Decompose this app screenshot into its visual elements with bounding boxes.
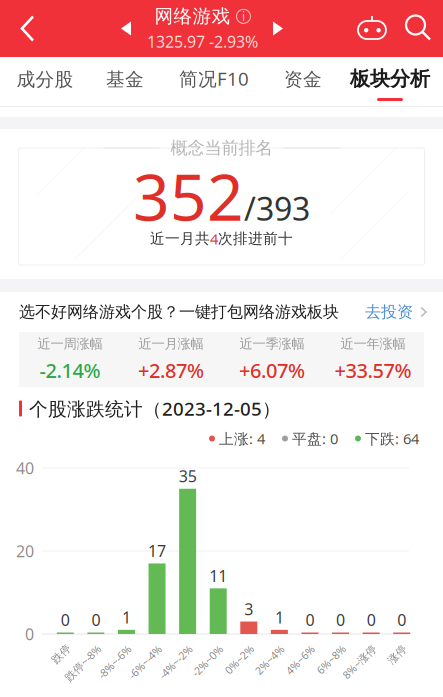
staticText: 板块分析 — [350, 66, 430, 91]
staticText: 平盘: 0 — [292, 429, 338, 448]
staticText: 资金 — [284, 68, 322, 91]
staticText: 0 — [367, 609, 376, 630]
staticText: 跌停~-8% — [60, 656, 106, 670]
staticText: 基金 — [106, 68, 144, 91]
staticText: 2%~4% — [252, 653, 288, 667]
staticText: /393 — [244, 187, 310, 230]
button[interactable]: Previous sector — [111, 0, 141, 57]
staticText: 近一月涨幅 — [138, 335, 203, 352]
staticText: 下跌: 64 — [365, 429, 419, 448]
staticText: 简况F10 — [179, 66, 249, 91]
staticText: -2.14% — [39, 357, 100, 383]
staticText: 352 — [133, 153, 244, 238]
staticText: 20 — [16, 540, 34, 562]
staticText: i — [242, 8, 245, 24]
staticText: 6%~8% — [313, 652, 349, 666]
button[interactable]: 板块分析 — [344, 57, 436, 106]
staticText: 35 — [179, 465, 197, 487]
staticText: 概念当前排名 — [170, 137, 272, 159]
staticText: -8%~-6% — [94, 655, 136, 669]
staticText: 选不好网络游戏个股？一键打包网络游戏板块 — [19, 302, 339, 322]
staticText: 4 — [210, 229, 218, 248]
staticText: 成分股 — [16, 68, 73, 91]
staticText: 次排进前十 — [218, 230, 293, 248]
staticText: 1 — [275, 607, 284, 628]
staticText: 跌停 — [50, 647, 72, 661]
staticText: 0 — [336, 609, 345, 630]
staticText: 8%~涨停 — [338, 654, 381, 669]
staticText: 网络游戏 — [154, 5, 230, 28]
staticText: 17 — [148, 540, 166, 561]
staticText: 1325.97 -2.93% — [147, 31, 258, 52]
button[interactable]: Search — [395, 0, 443, 57]
staticText: 11 — [209, 565, 227, 586]
staticText: 1 — [122, 607, 131, 628]
staticText: 近一季涨幅 — [239, 335, 304, 352]
staticText: 近一周涨幅 — [37, 335, 102, 352]
staticText: -4%~-2% — [155, 655, 197, 669]
staticText: +33.57% — [334, 357, 411, 383]
staticText: 0 — [305, 609, 314, 630]
staticText: 涨停 — [386, 648, 408, 661]
staticText: +6.07% — [239, 357, 305, 383]
button[interactable]: 资金 — [262, 57, 344, 106]
staticText: +2.87% — [138, 357, 204, 383]
staticText: 去投资 — [365, 302, 413, 322]
staticText: 0 — [61, 609, 70, 630]
staticText: 近一月共 — [150, 230, 210, 248]
button[interactable]: 选不好网络游戏个股？一键打包网络游戏板块 — [0, 292, 443, 332]
button[interactable]: 简况F10 — [166, 57, 262, 106]
staticText: 3 — [244, 598, 253, 619]
button[interactable]: 基金 — [84, 57, 166, 106]
button[interactable]: 成分股 — [6, 57, 84, 106]
staticText: -6%~-4% — [124, 655, 166, 669]
staticText: 0 — [25, 623, 34, 645]
button[interactable]: Next sector — [263, 0, 293, 57]
staticText: 近一年涨幅 — [340, 335, 405, 352]
staticText: 上涨: 4 — [219, 429, 265, 448]
staticText: -2%~0% — [188, 654, 227, 668]
staticText: 0%~2% — [221, 652, 257, 666]
staticText: 个股涨跌统计（2023-12-05） — [29, 396, 281, 421]
staticText: 0 — [397, 609, 406, 630]
staticText: 0 — [91, 609, 100, 630]
staticText: 4%~6% — [282, 653, 318, 667]
button[interactable]: Back — [0, 0, 56, 57]
staticText: 40 — [16, 457, 34, 479]
button[interactable]: Assistant — [349, 0, 395, 57]
